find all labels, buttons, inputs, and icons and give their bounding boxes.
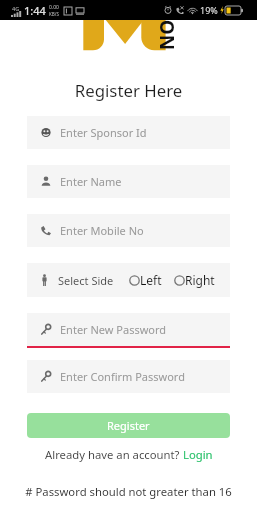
staticText: KB/S [49, 11, 59, 17]
staticText: Left [140, 272, 162, 288]
staticText: Register [107, 418, 150, 433]
staticText: Select Side [58, 273, 114, 288]
staticText: 0.00 [49, 4, 59, 11]
staticText: 4G [12, 5, 20, 12]
button[interactable]: Right [174, 272, 215, 288]
button[interactable]: Left [129, 272, 162, 288]
button[interactable]: Enter Sponsor Id [27, 116, 230, 149]
button[interactable]: Enter Mobile No [27, 214, 230, 247]
staticText: 19% [200, 4, 218, 16]
button[interactable]: Enter Confirm Password [27, 360, 230, 393]
staticText: # Password should not greater than 16 [0, 484, 257, 499]
button[interactable]: Enter New Password [27, 313, 230, 346]
button[interactable]: Register [27, 413, 230, 438]
staticText: ZON [154, 9, 180, 51]
staticText: Enter Sponsor Id [60, 125, 147, 140]
staticText: Enter Confirm Password [60, 369, 185, 384]
staticText: Right [185, 272, 215, 288]
staticText: Register Here [0, 79, 257, 102]
staticText: Enter Mobile No [60, 223, 144, 238]
staticText: Already have an account? [45, 447, 183, 462]
staticText: Enter Name [60, 174, 122, 189]
button[interactable]: Enter Name [27, 165, 230, 198]
staticText: Enter New Password [60, 322, 167, 337]
staticText: 1:44 [24, 3, 46, 18]
button[interactable]: Login [183, 447, 213, 462]
